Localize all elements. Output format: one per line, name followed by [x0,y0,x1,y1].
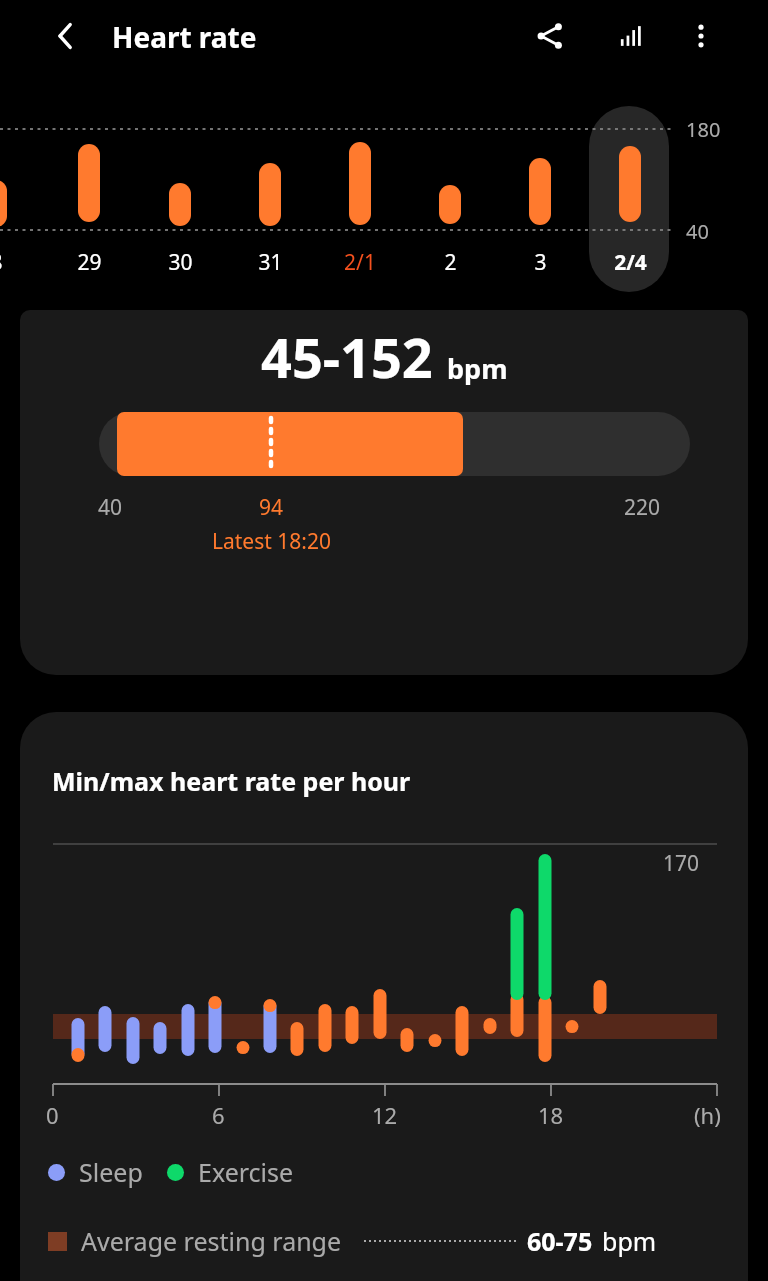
staticText: 0 [46,1100,59,1130]
staticText: 2/4 [614,248,647,277]
button[interactable]: 3 [505,248,575,277]
staticText: 12 [372,1100,398,1130]
staticText: 45-152 [261,320,433,394]
button[interactable]: Back [42,12,90,60]
staticText: 60-75 [527,1224,593,1258]
staticText: Min/max heart rate per hour [52,764,411,798]
staticText: Average resting range [81,1224,342,1258]
staticText: 3 [534,248,547,277]
button[interactable]: 45-152 [20,310,748,675]
staticText: 2/1 [344,248,376,277]
staticText: bpm [447,350,508,387]
staticText: 6 [212,1100,225,1130]
button[interactable]: Sleep [48,1155,294,1189]
staticText: Sleep [79,1155,143,1189]
button[interactable]: Share [526,12,574,60]
staticText: 40 [98,493,123,522]
staticText: 29 [77,248,102,277]
staticText: Latest 18:20 [212,527,331,556]
button[interactable]: 30 [145,248,215,277]
staticText: (h) [694,1100,721,1130]
button[interactable]: 2/4 [595,248,665,277]
staticText: Exercise [198,1155,294,1189]
button[interactable]: Chart view [607,12,655,60]
button[interactable]: 2 [415,248,485,277]
button[interactable]: 31 [235,248,305,277]
button[interactable]: Average resting range [48,1224,748,1258]
staticText: bpm [602,1224,657,1258]
staticText: 94 [259,493,284,522]
staticText: 31 [258,248,283,277]
staticText: 18 [538,1100,564,1130]
staticText: 8 [0,248,3,277]
button[interactable]: Selected day 2/4 [589,106,669,292]
staticText: 220 [624,493,661,522]
button[interactable]: More options [677,12,725,60]
button[interactable]: 8 [0,248,31,277]
staticText: 30 [168,248,193,277]
staticText: 2 [444,248,457,277]
button[interactable]: 2/1 [325,248,395,277]
button[interactable]: 29 [54,248,124,277]
button[interactable]: Min/max heart rate per hour [20,712,748,1281]
staticText: Heart rate [112,18,257,56]
staticText: 170 [663,849,700,878]
staticText: 40 [686,218,709,245]
staticText: 180 [686,116,721,143]
